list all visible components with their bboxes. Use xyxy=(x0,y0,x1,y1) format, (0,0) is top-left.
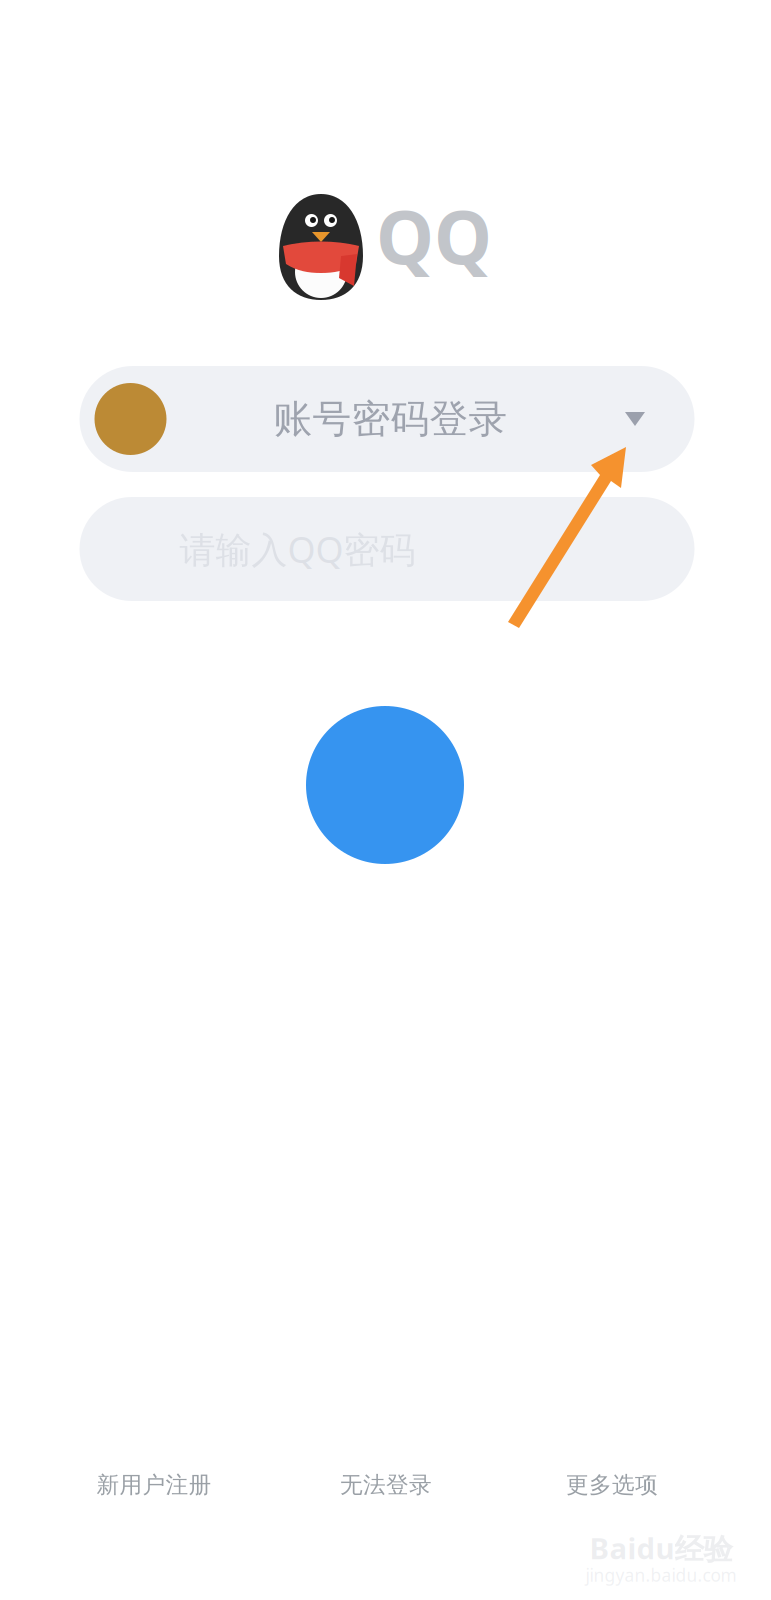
staticText: 无法登录 xyxy=(340,1471,432,1499)
button[interactable]: 请输入QQ密码 xyxy=(79,497,694,601)
button[interactable]: 更多选项 xyxy=(566,1471,658,1499)
staticText: jingyan.baidu.com xyxy=(585,1563,736,1586)
staticText: 请输入QQ密码 xyxy=(179,525,415,573)
staticText: 账号密码登录 xyxy=(273,395,507,443)
button[interactable]: 选择其他账号 xyxy=(592,366,678,472)
staticText: Baidu经验 xyxy=(589,1528,732,1567)
button[interactable]: 登录 xyxy=(306,706,464,864)
staticText: 新用户注册 xyxy=(96,1471,211,1499)
button[interactable]: 新用户注册 xyxy=(96,1471,211,1499)
button[interactable]: 无法登录 xyxy=(340,1471,432,1499)
button[interactable]: 账号密码登录 xyxy=(79,366,694,472)
staticText: QQ xyxy=(376,187,492,285)
staticText: 更多选项 xyxy=(566,1471,658,1499)
